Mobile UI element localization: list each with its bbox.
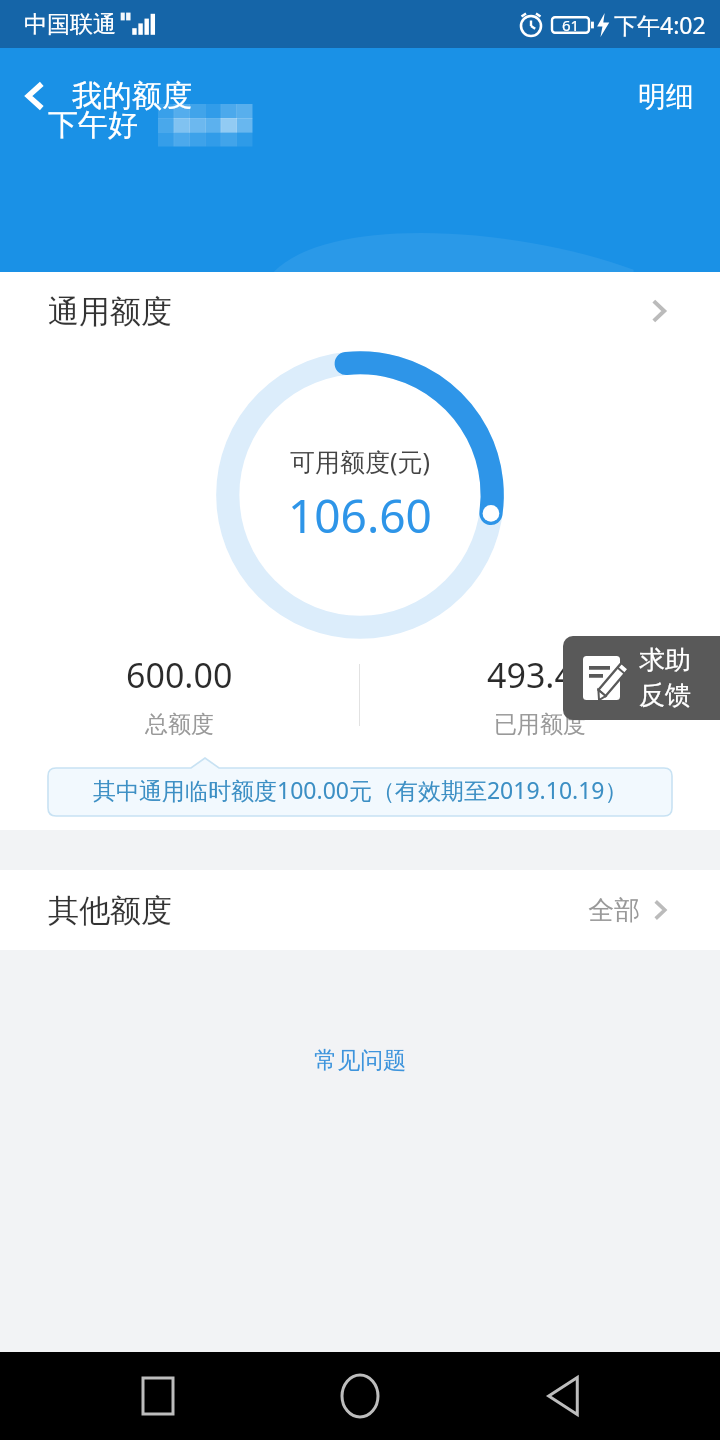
button[interactable]: 求助反馈 xyxy=(563,636,720,720)
button[interactable] xyxy=(0,758,720,816)
staticText: 明细 xyxy=(638,79,694,114)
staticText: 61 xyxy=(562,15,580,35)
button[interactable]: 其他额度 xyxy=(0,870,720,950)
staticText: 通用额度 xyxy=(48,292,172,331)
button[interactable]: 常见问题 xyxy=(294,1040,426,1081)
button[interactable]: Back xyxy=(518,1352,608,1440)
staticText: 106.60 xyxy=(288,484,432,547)
button[interactable]: Back xyxy=(0,60,72,132)
button[interactable]: Recents xyxy=(113,1352,203,1440)
staticText: 可用额度(元) xyxy=(290,444,431,478)
button[interactable]: 通用额度 xyxy=(0,272,720,350)
staticText: 全部 xyxy=(588,894,640,927)
staticText: 600.00 xyxy=(126,652,233,698)
staticText: 下午好 xyxy=(48,106,138,144)
staticText: 我的额度 xyxy=(72,77,192,115)
staticText: 其中通用临时额度100.00元（有效期至2019.10.19） xyxy=(93,774,628,805)
button[interactable]: Home xyxy=(315,1352,405,1440)
staticText: 下午4:02 xyxy=(614,9,706,40)
staticText: 已用额度 xyxy=(494,710,586,739)
staticText: 493.40 xyxy=(487,652,594,698)
staticText: 中国联通 xyxy=(24,10,116,39)
staticText: 总额度 xyxy=(145,710,214,739)
staticText: 其他额度 xyxy=(48,891,172,930)
staticText: 反馈 xyxy=(639,679,691,712)
staticText: 求助 xyxy=(639,644,691,677)
button[interactable]: 明细 xyxy=(612,63,720,130)
staticText: 常见问题 xyxy=(314,1046,406,1075)
